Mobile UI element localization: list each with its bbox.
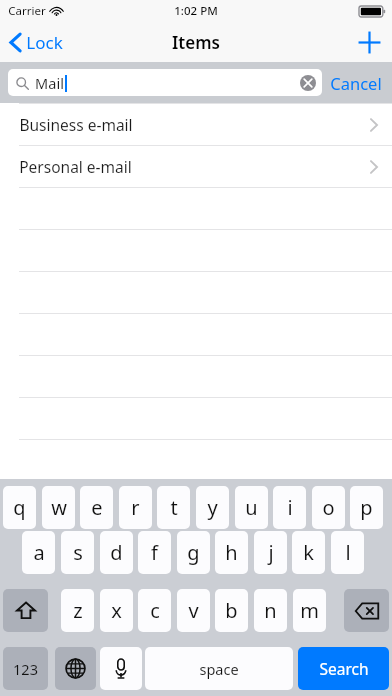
staticText: space	[199, 659, 239, 679]
button[interactable]: w	[42, 486, 75, 529]
staticText: e	[91, 494, 103, 521]
button[interactable]: Clear text	[298, 73, 318, 93]
button[interactable]: e	[80, 486, 113, 529]
staticText: Mail	[35, 73, 64, 93]
button[interactable]: b	[215, 589, 248, 632]
staticText: o	[322, 494, 335, 521]
staticText: g	[187, 539, 200, 566]
button[interactable]: l	[331, 531, 364, 574]
button[interactable]: space	[145, 647, 293, 690]
button[interactable]: j	[254, 531, 287, 574]
staticText: p	[360, 494, 373, 521]
staticText: k	[303, 539, 314, 566]
button[interactable]: r	[119, 486, 152, 529]
button[interactable]: d	[100, 531, 133, 574]
staticText: j	[268, 539, 274, 566]
button[interactable]: Search	[298, 647, 389, 690]
button[interactable]: Lock	[0, 25, 73, 60]
staticText: i	[287, 494, 293, 521]
button[interactable]: i	[273, 486, 306, 529]
staticText: d	[110, 539, 123, 566]
button[interactable]: u	[235, 486, 268, 529]
button[interactable]: Mail	[8, 69, 322, 96]
staticText: b	[225, 597, 238, 624]
staticText: z	[73, 597, 83, 624]
staticText: 1:02 PM	[174, 3, 218, 19]
staticText: u	[245, 494, 258, 521]
button[interactable]: Add item	[347, 25, 392, 60]
staticText: s	[73, 539, 83, 566]
button[interactable]: s	[61, 531, 94, 574]
staticText: Business e-mail	[19, 114, 133, 135]
button[interactable]: Dictate	[100, 647, 142, 690]
staticText: x	[111, 597, 122, 624]
button[interactable]: Shift	[3, 589, 48, 632]
staticText: 123	[13, 659, 38, 679]
button[interactable]: 123	[3, 647, 48, 690]
staticText: a	[33, 539, 45, 566]
staticText: h	[225, 539, 238, 566]
staticText: Carrier	[8, 3, 46, 19]
button[interactable]: Personal e-mail	[0, 146, 392, 187]
button[interactable]: Switch keyboard language	[55, 647, 96, 690]
button[interactable]: f	[138, 531, 171, 574]
staticText: Lock	[26, 31, 63, 54]
staticText: m	[300, 597, 319, 624]
button[interactable]: x	[100, 589, 133, 632]
staticText: w	[51, 494, 67, 521]
button[interactable]: h	[215, 531, 248, 574]
staticText: f	[151, 539, 158, 566]
staticText: Personal e-mail	[19, 156, 132, 177]
staticText: r	[131, 494, 140, 521]
staticText: l	[345, 539, 351, 566]
staticText: Items	[172, 31, 220, 54]
button[interactable]: v	[177, 589, 210, 632]
staticText: y	[207, 494, 218, 521]
button[interactable]: Backspace	[344, 589, 389, 632]
button[interactable]: k	[292, 531, 325, 574]
button[interactable]: c	[138, 589, 171, 632]
staticText: q	[13, 494, 26, 521]
button[interactable]: Business e-mail	[0, 104, 392, 145]
button[interactable]: n	[254, 589, 287, 632]
staticText: Search	[319, 658, 369, 679]
button[interactable]: o	[312, 486, 345, 529]
button[interactable]: y	[196, 486, 229, 529]
staticText: t	[170, 494, 178, 521]
button[interactable]: g	[177, 531, 210, 574]
button[interactable]: a	[22, 531, 55, 574]
button[interactable]: p	[350, 486, 383, 529]
button[interactable]: q	[3, 486, 36, 529]
button[interactable]: Cancel	[320, 66, 392, 100]
button[interactable]: z	[61, 589, 94, 632]
staticText: v	[188, 597, 199, 624]
button[interactable]: m	[293, 589, 326, 632]
staticText: c	[150, 597, 160, 624]
staticText: Cancel	[330, 72, 382, 94]
button[interactable]: t	[157, 486, 190, 529]
staticText: n	[264, 597, 277, 624]
